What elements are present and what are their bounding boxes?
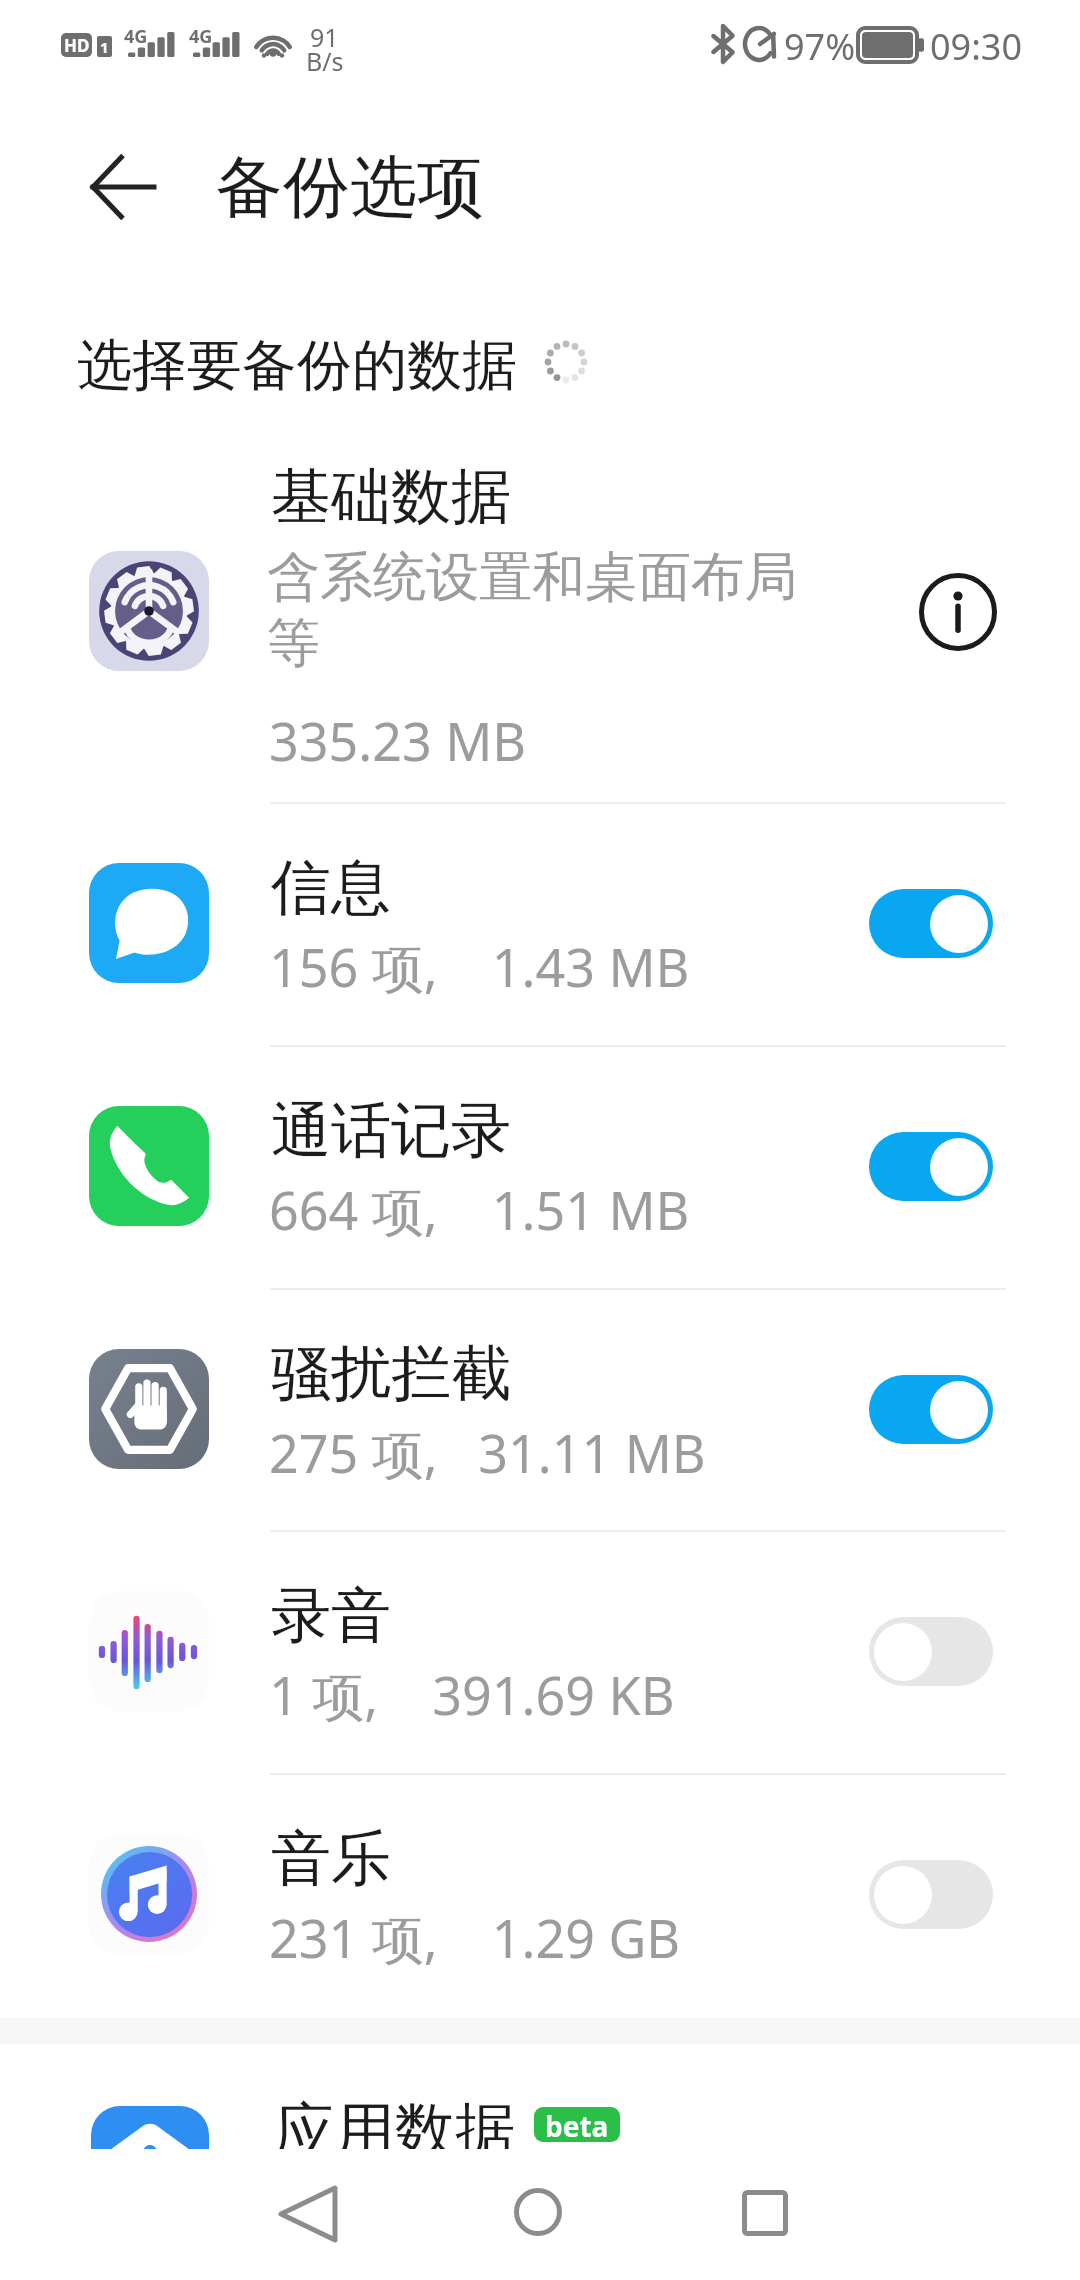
- staticText: 基础数据: [271, 459, 511, 535]
- button[interactable]: Info: [906, 560, 1010, 664]
- staticText: 备份选项: [216, 145, 484, 229]
- button[interactable]: 信息: [0, 822, 1080, 1065]
- button[interactable]: Back: [65, 129, 181, 245]
- staticText: 91: [310, 20, 339, 54]
- staticText: 录音: [271, 1578, 391, 1654]
- button[interactable]: 音乐: [0, 1793, 1080, 2036]
- button[interactable]: 通话记录: [0, 1065, 1080, 1308]
- staticText: 1 项, 391.69 KB: [269, 1659, 675, 1730]
- button[interactable]: 应用数据: [0, 2060, 1080, 2149]
- staticText: 含系统设置和桌面布局: [267, 544, 797, 611]
- staticText: 97%: [784, 22, 856, 71]
- staticText: 通话记录: [271, 1093, 511, 1169]
- staticText: 156 项, 1.43 MB: [269, 931, 690, 1002]
- staticText: 骚扰拦截: [271, 1336, 511, 1412]
- button[interactable]: Toggle off: [869, 1860, 993, 1929]
- button[interactable]: 骚扰拦截: [0, 1308, 1080, 1551]
- staticText: 4G: [189, 24, 213, 49]
- staticText: 选择要备份的数据: [77, 331, 517, 400]
- button[interactable]: Toggle on: [869, 1375, 993, 1444]
- staticText: 275 项, 31.11 MB: [269, 1417, 706, 1488]
- button[interactable]: 基础数据: [0, 430, 1080, 802]
- staticText: 音乐: [271, 1821, 391, 1897]
- staticText: 664 项, 1.51 MB: [269, 1174, 690, 1245]
- staticText: beta: [545, 2107, 609, 2142]
- staticText: 231 项, 1.29 GB: [269, 1902, 681, 1973]
- button[interactable]: Back: [263, 2169, 353, 2259]
- staticText: 应用数据: [275, 2093, 515, 2169]
- staticText: B/s: [306, 44, 344, 78]
- button[interactable]: Toggle on: [869, 1132, 993, 1201]
- button[interactable]: Home: [493, 2167, 583, 2257]
- button[interactable]: Recents: [720, 2168, 810, 2258]
- staticText: HD: [64, 34, 90, 57]
- staticText: 1: [100, 37, 109, 57]
- button[interactable]: 录音: [0, 1550, 1080, 1793]
- staticText: 09:30: [930, 22, 1023, 71]
- staticText: 信息: [271, 850, 391, 926]
- button[interactable]: Toggle on: [869, 889, 993, 958]
- staticText: 等: [267, 610, 320, 677]
- button[interactable]: Toggle off: [869, 1617, 993, 1686]
- staticText: 4G: [124, 24, 148, 49]
- staticText: 335.23 MB: [269, 705, 527, 776]
